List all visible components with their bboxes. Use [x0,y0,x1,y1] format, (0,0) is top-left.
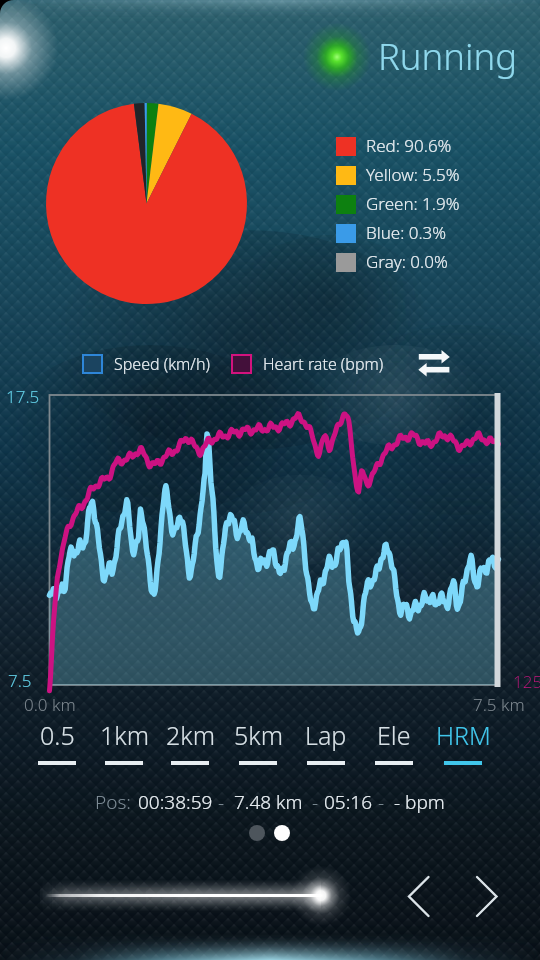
staticText: 05:16 [324,789,373,815]
staticText: 7.5 [8,669,32,692]
button[interactable]: Yellow: 5.5% [336,161,506,190]
staticText: - [218,789,225,815]
staticText: 0.5 [40,718,75,752]
button[interactable]: 0.5 [24,718,90,770]
staticText: 17.5 [6,385,40,408]
button[interactable]: Lap [293,718,359,770]
button[interactable]: Swap series [410,344,458,392]
staticText: 125 [513,670,540,693]
staticText: - [312,789,319,815]
button[interactable]: HRM [430,718,496,770]
staticText: Blue: 0.3% [366,221,447,244]
button[interactable]: Previous [388,862,458,932]
button[interactable]: Heart rate (bpm) [231,353,384,374]
staticText: Yellow: 5.5% [366,163,460,186]
staticText: 1km [100,718,149,752]
button[interactable]: 2km [157,718,223,770]
button[interactable]: Next [456,862,526,932]
button[interactable]: Page 1 [249,825,265,841]
button[interactable]: Speed (km/h) [82,353,210,374]
staticText: 5km [234,718,283,752]
button[interactable]: 5km [225,718,291,770]
staticText: Lap [305,718,347,752]
staticText: Gray: 0.0% [366,250,448,273]
button[interactable]: Green: 1.9% [336,190,506,219]
staticText: 00:38:59 [138,789,213,815]
staticText: Heart rate (bpm) [263,353,384,374]
staticText: 7.5 km [473,693,525,716]
button[interactable]: Red: 90.6% [336,132,506,161]
button[interactable]: Gray: 0.0% [336,248,506,277]
button[interactable]: Page 2 [274,825,290,841]
button[interactable]: Scrub position [30,866,360,926]
button[interactable]: Running [378,31,518,81]
staticText: Ele [377,718,411,752]
staticText: 2km [166,718,215,752]
staticText: Pos: [95,789,131,815]
staticText: Speed (km/h) [114,353,210,374]
staticText: 0.0 km [24,693,76,716]
staticText: - [378,789,385,815]
staticText: HRM [436,718,491,752]
staticText: Green: 1.9% [366,192,460,215]
staticText: Red: 90.6% [366,134,452,157]
staticText: - bpm [394,789,445,815]
button[interactable]: 1km [91,718,157,770]
button[interactable]: Blue: 0.3% [336,219,506,248]
staticText: 7.48 km [234,789,303,815]
button[interactable]: Ele [361,718,427,770]
